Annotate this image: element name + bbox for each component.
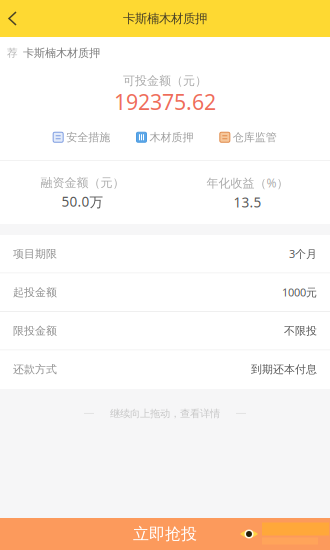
button[interactable]: 限投金额 xyxy=(0,312,330,350)
button[interactable]: Back xyxy=(0,0,40,37)
button[interactable]: 起投金额 xyxy=(0,273,330,312)
staticText: 立即抢投 xyxy=(133,524,197,544)
staticText: 继续向上拖动，查看详情 xyxy=(110,407,220,420)
staticText: 192375.62 xyxy=(114,87,216,116)
staticText: 不限投 xyxy=(284,324,317,338)
staticText: 3个月 xyxy=(289,246,317,261)
staticText: 年化收益（%） xyxy=(206,175,288,191)
staticText: 起投金额 xyxy=(13,285,57,299)
staticText: 项目期限 xyxy=(13,247,57,261)
staticText: 卡斯楠木材质押 xyxy=(23,46,100,60)
button[interactable]: 还款方式 xyxy=(0,350,330,389)
staticText: 50.0万 xyxy=(61,192,103,211)
staticText: 荐 xyxy=(7,46,18,60)
button[interactable]: 立即抢投 xyxy=(0,518,330,550)
staticText: 还款方式 xyxy=(13,362,57,376)
staticText: 仓库监管 xyxy=(233,130,277,144)
staticText: 卡斯楠木材质押 xyxy=(123,11,207,26)
staticText: 安全措施 xyxy=(66,130,110,144)
button[interactable]: 项目期限 xyxy=(0,235,330,273)
staticText: 到期还本付息 xyxy=(251,362,317,376)
staticText: 木材质押 xyxy=(149,130,193,144)
staticText: 限投金额 xyxy=(13,324,57,338)
staticText: 1000元 xyxy=(282,285,317,300)
staticText: 13.5 xyxy=(233,193,261,211)
staticText: 可投金额（元） xyxy=(123,73,207,88)
staticText: 融资金额（元） xyxy=(40,175,124,190)
